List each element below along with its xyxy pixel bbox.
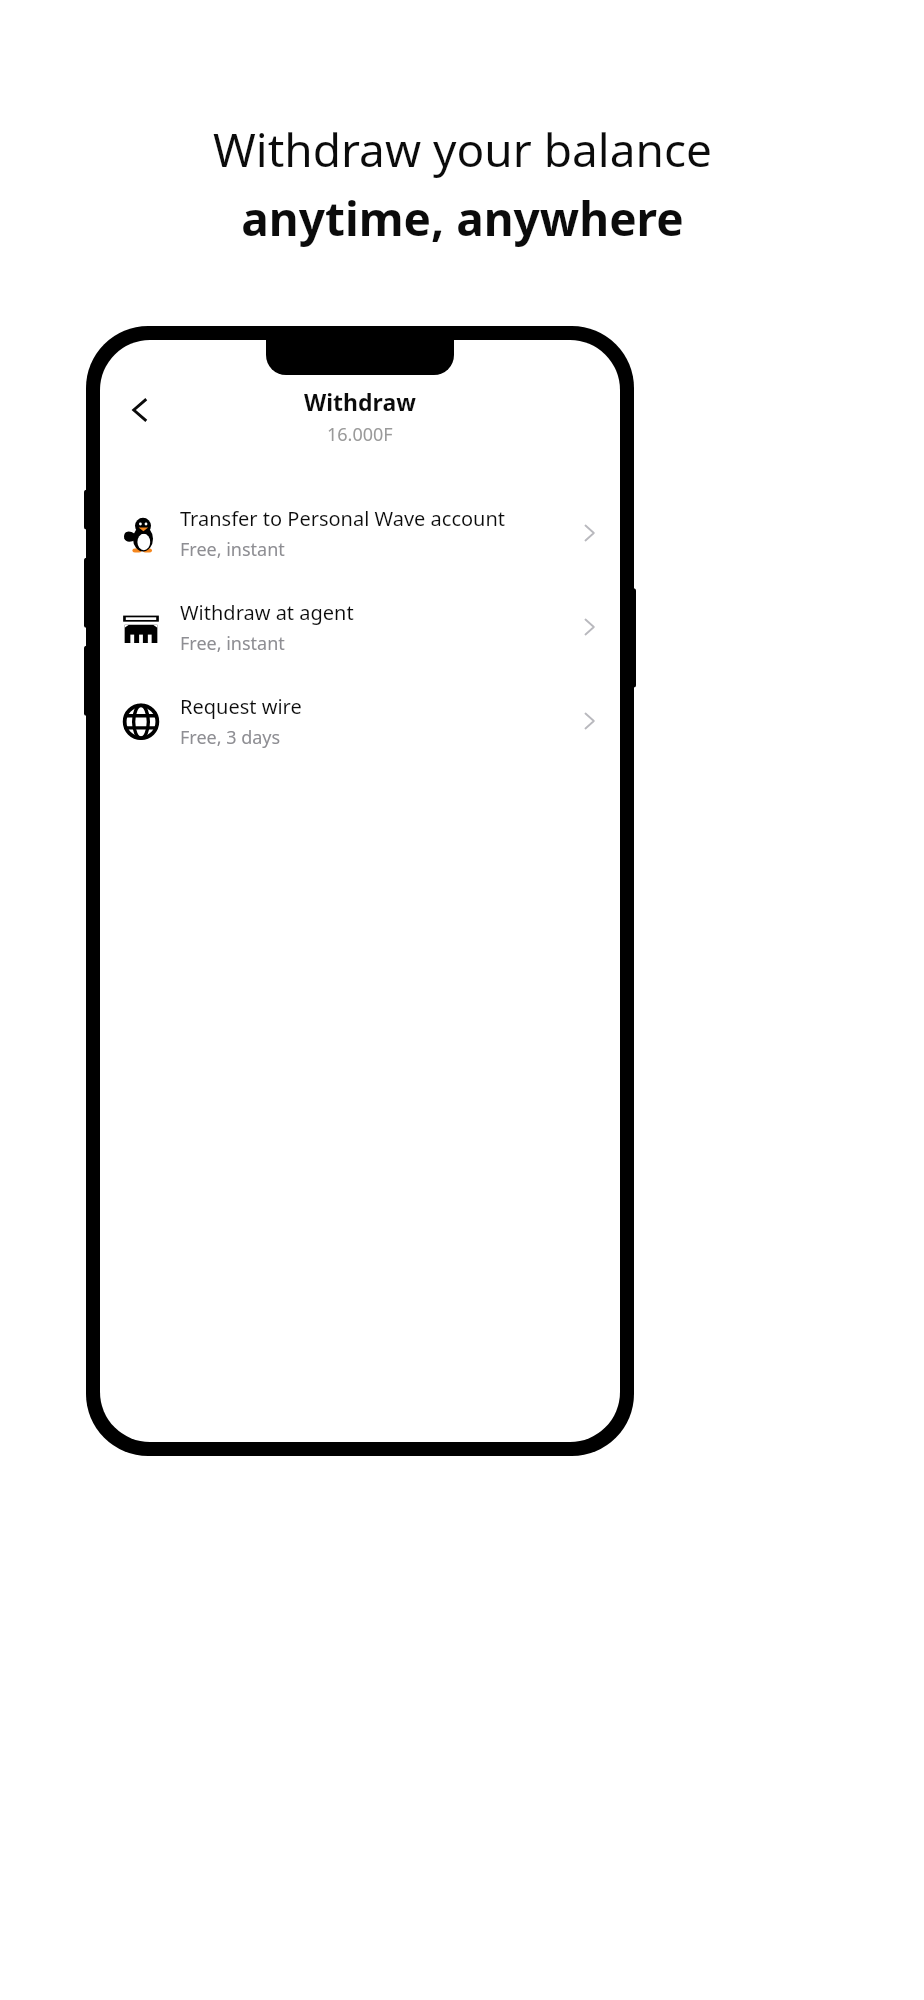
button[interactable]: Back (114, 384, 166, 436)
staticText: Withdraw at agent (180, 599, 354, 626)
staticText: 16.000F (327, 422, 393, 447)
button[interactable]: Request wire (100, 674, 620, 768)
staticText: anytime, anywhere (241, 187, 684, 250)
button[interactable]: Transfer to Personal Wave account (100, 486, 620, 580)
button[interactable]: Withdraw at agent (100, 580, 620, 674)
staticText: Withdraw (304, 386, 416, 417)
staticText: Request wire (180, 693, 302, 720)
staticText: Free, instant (180, 537, 285, 562)
staticText: Free, 3 days (180, 725, 281, 750)
staticText: Transfer to Personal Wave account (180, 505, 506, 532)
staticText: Free, instant (180, 631, 285, 656)
staticText: Withdraw your balance (213, 118, 712, 181)
